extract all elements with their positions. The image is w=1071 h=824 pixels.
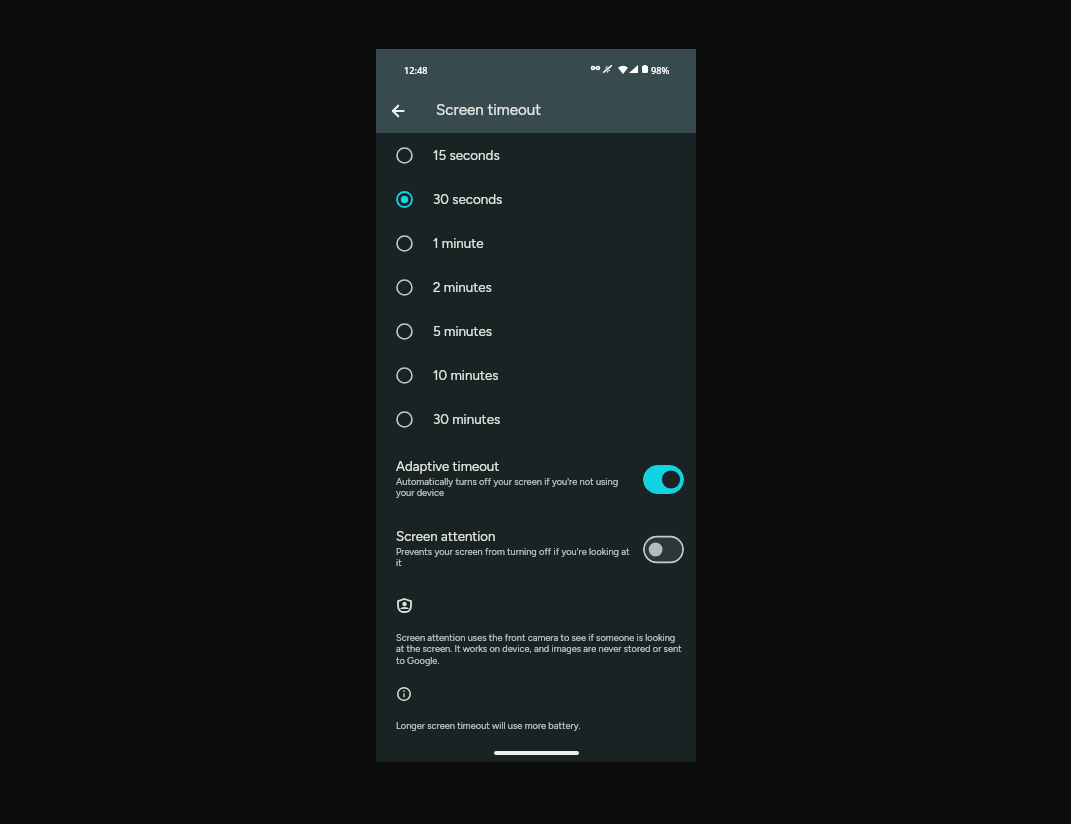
staticText: 98%	[651, 64, 670, 76]
staticText: Adaptive timeout	[396, 458, 500, 474]
staticText: Screen attention uses the front camera t…	[396, 632, 684, 666]
button[interactable]: Screen attention	[376, 528, 696, 568]
button[interactable]: 5 minutes	[376, 309, 696, 353]
button[interactable]: 2 minutes	[376, 265, 696, 309]
staticText: 15 seconds	[433, 147, 500, 163]
staticText: 10 minutes	[433, 367, 499, 383]
button[interactable]: Turn on	[643, 535, 684, 564]
staticText: 30 seconds	[433, 191, 503, 207]
button[interactable]: 10 minutes	[376, 353, 696, 397]
staticText: 30 minutes	[433, 411, 501, 427]
button[interactable]: Adaptive timeout	[376, 458, 696, 498]
staticText: Longer screen timeout will use more batt…	[396, 720, 581, 731]
button[interactable]: Back	[378, 91, 418, 131]
button[interactable]: 15 seconds	[376, 133, 696, 177]
staticText: Screen timeout	[436, 101, 541, 119]
button[interactable]: Turn off	[643, 465, 684, 494]
staticText: 5 minutes	[433, 323, 493, 339]
staticText: Prevents your screen from turning off if…	[396, 546, 634, 568]
staticText: Automatically turns off your screen if y…	[396, 476, 634, 498]
button[interactable]: 30 seconds	[376, 177, 696, 221]
staticText: 12:48	[404, 64, 428, 76]
staticText: Screen attention	[396, 528, 496, 544]
button[interactable]: 1 minute	[376, 221, 696, 265]
staticText: 2 minutes	[433, 279, 492, 295]
staticText: 1 minute	[433, 235, 484, 251]
button[interactable]: 30 minutes	[376, 397, 696, 441]
